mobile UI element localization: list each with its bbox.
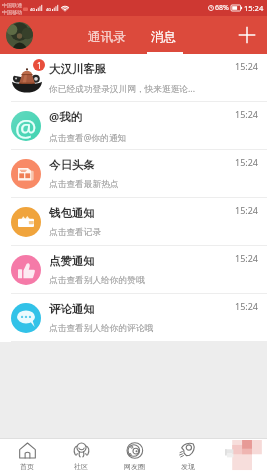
button[interactable]: 评论通知 [0,294,267,342]
staticText: 15:24 [235,252,259,264]
staticText: 首页 [20,462,34,471]
staticText: 今日头条 [49,158,95,172]
button[interactable]: @ [0,102,267,150]
staticText: 15:24 [235,156,259,168]
staticText: 中国移动 [2,9,22,15]
staticText: 15:24 [235,60,259,72]
staticText: 4G [30,7,36,12]
staticText: 4G [46,7,52,12]
button[interactable]: 消息 [144,24,183,50]
staticText: 发现 [181,462,195,471]
staticText: @ [15,111,37,141]
staticText: 网友圈 [124,462,145,471]
staticText: 社区 [74,462,88,471]
staticText: 点击查看@你的通知 [49,132,127,144]
button[interactable]: 通讯录 [81,24,133,50]
staticText: 点击查看别人给你的评论哦 [49,323,154,334]
staticText: 通讯录 [88,29,126,45]
staticText: 68% [215,3,229,13]
staticText: 大汉川客服 [49,62,106,76]
staticText: 中国联通 [2,2,22,8]
staticText: 点击查看最新热点 [49,179,119,190]
staticText: 钱包通知 [49,206,95,220]
staticText: 消息 [151,29,176,45]
button[interactable]: 网友圈 [108,439,161,474]
button[interactable]: Profile [6,22,33,49]
button[interactable]: 社区 [54,439,108,474]
staticText: 点赞通知 [49,254,95,268]
staticText: 15:24 [244,3,264,13]
button[interactable]: 钱包通知 [0,198,267,246]
button[interactable]: Add [236,24,258,46]
button[interactable]: 发现 [161,439,214,474]
staticText: 评论通知 [49,302,95,316]
staticText: 点击查看记录 [49,227,102,238]
button[interactable]: 首页 [0,439,54,474]
button[interactable]: My profile [214,439,267,474]
staticText: 1 [37,60,42,71]
staticText: 你已经成功登录汉川网，快来逛逛论... [49,83,195,95]
staticText: 15:24 [235,204,259,216]
staticText: 15:24 [235,300,259,312]
button[interactable]: 点赞通知 [0,246,267,294]
staticText: 15:24 [235,108,259,120]
button[interactable]: 1 [0,54,267,102]
staticText: 点击查看别人给你的赞哦 [49,275,145,286]
button[interactable]: 今日头条 [0,150,267,198]
staticText: @我的 [49,109,83,125]
